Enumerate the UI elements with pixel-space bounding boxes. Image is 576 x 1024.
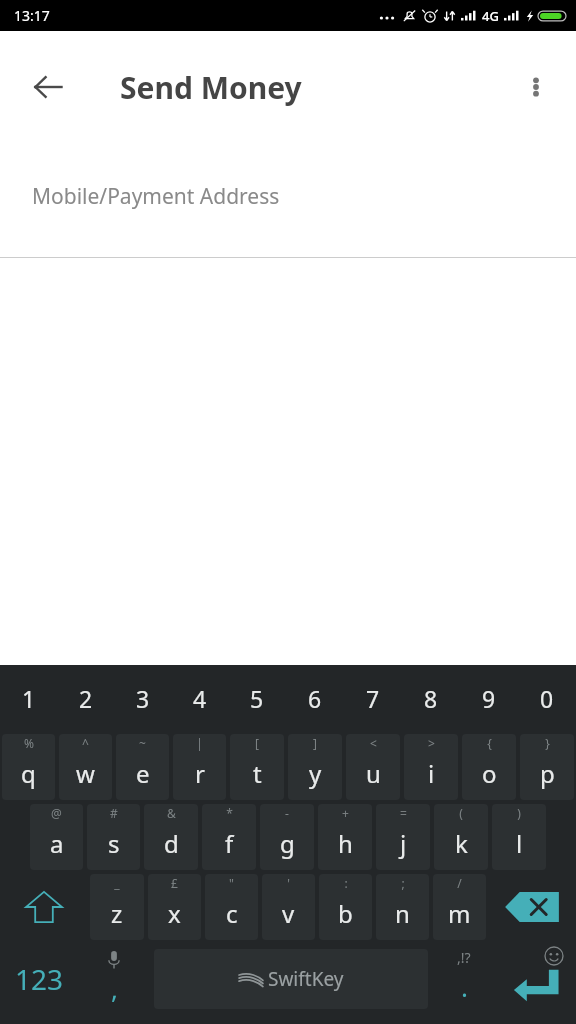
staticText: ~ (139, 735, 146, 751)
button[interactable]: Back (20, 59, 76, 115)
staticText: } (545, 735, 550, 751)
staticText: > (428, 735, 435, 751)
button[interactable]: 7 (344, 665, 402, 732)
staticText: w (76, 757, 95, 790)
button[interactable]: More options (508, 59, 564, 115)
button[interactable]: ) (492, 804, 546, 870)
staticText: 0 (540, 683, 554, 714)
button[interactable]: < (346, 734, 400, 800)
staticText: - (285, 805, 289, 821)
staticText: g (280, 827, 295, 860)
button[interactable]: 6 (286, 665, 344, 732)
button[interactable]: 2 (57, 665, 114, 732)
button[interactable]: > (404, 734, 458, 800)
button[interactable]: Space (154, 949, 428, 1009)
button[interactable]: Backspace (488, 872, 576, 942)
staticText: 123 (15, 960, 64, 998)
button[interactable]: - (260, 804, 314, 870)
staticText: 2 (79, 683, 93, 714)
staticText: " (229, 875, 234, 891)
staticText: ( (459, 805, 463, 821)
staticText: / (457, 875, 462, 891)
button[interactable]: 5 (228, 665, 286, 732)
staticText: n (395, 897, 410, 930)
button[interactable]: [ (230, 734, 284, 800)
button[interactable]: " (205, 874, 258, 940)
button[interactable]: 8 (402, 665, 460, 732)
staticText: v (282, 897, 295, 930)
staticText: % (24, 735, 34, 751)
button[interactable]: _ (90, 874, 144, 940)
staticText: Send Money (120, 67, 302, 108)
staticText: z (111, 897, 123, 930)
button[interactable]: # (87, 804, 140, 870)
staticText: l (516, 827, 523, 860)
staticText: 6 (308, 683, 322, 714)
staticText: # (110, 805, 118, 821)
staticText: p (540, 757, 555, 790)
staticText: ) (517, 805, 521, 821)
button[interactable]: % (2, 734, 55, 800)
button[interactable]: Period and punctuation (432, 942, 496, 1016)
button[interactable]: = (376, 804, 430, 870)
button[interactable]: 9 (460, 665, 518, 732)
staticText: 7 (366, 683, 380, 714)
button[interactable]: ] (288, 734, 342, 800)
button[interactable]: Mobile/Payment Address (0, 143, 576, 257)
staticText: . (461, 969, 468, 1004)
staticText: y (309, 757, 322, 790)
button[interactable]: ( (434, 804, 488, 870)
button[interactable]: @ (30, 804, 83, 870)
button[interactable]: 0 (518, 665, 576, 732)
staticText: i (428, 757, 435, 790)
staticText: r (195, 757, 205, 790)
staticText: 3 (136, 683, 150, 714)
staticText: [ (255, 735, 259, 751)
button[interactable]: Shift (0, 872, 88, 942)
staticText: | (196, 735, 203, 751)
button[interactable]: Comma and voice input (78, 942, 150, 1016)
button[interactable]: ; (376, 874, 429, 940)
staticText: b (338, 897, 353, 930)
staticText: 1 (22, 683, 36, 714)
staticText: s (108, 827, 120, 860)
staticText: e (136, 757, 150, 790)
staticText: @ (51, 805, 62, 821)
staticText: 4G (482, 7, 499, 25)
button[interactable]: 3 (114, 665, 171, 732)
staticText: _ (114, 875, 120, 891)
button[interactable]: ^ (59, 734, 112, 800)
button[interactable]: 1 (0, 665, 57, 732)
button[interactable]: | (173, 734, 226, 800)
staticText: j (400, 827, 407, 860)
button[interactable]: & (144, 804, 198, 870)
staticText: + (342, 805, 349, 821)
staticText: c (226, 897, 238, 930)
staticText: a (50, 827, 64, 860)
staticText: t (253, 757, 262, 790)
button[interactable]: : (319, 874, 372, 940)
button[interactable]: ' (262, 874, 315, 940)
button[interactable]: Enter (496, 942, 576, 1016)
staticText: ; (401, 875, 405, 891)
button[interactable]: / (433, 874, 486, 940)
staticText: : (344, 875, 348, 891)
staticText: 4 (193, 683, 207, 714)
button[interactable]: * (202, 804, 256, 870)
button[interactable]: ~ (116, 734, 169, 800)
button[interactable]: 4 (171, 665, 228, 732)
button[interactable]: + (318, 804, 372, 870)
button[interactable]: £ (148, 874, 201, 940)
staticText: ' (287, 875, 290, 891)
button[interactable]: { (462, 734, 516, 800)
button[interactable]: 123 (0, 942, 78, 1016)
staticText: f (225, 827, 234, 860)
staticText: , (111, 971, 118, 1006)
staticText: m (448, 897, 471, 930)
staticText: ^ (82, 735, 89, 751)
button[interactable]: } (520, 734, 574, 800)
staticText: 9 (482, 683, 496, 714)
staticText: 8 (424, 683, 438, 714)
staticText: < (370, 735, 377, 751)
staticText: o (482, 757, 497, 790)
